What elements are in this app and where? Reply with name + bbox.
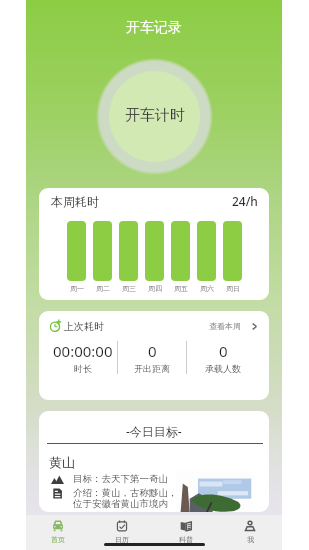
staticText: 时长: [74, 363, 92, 374]
staticText: 开出距离: [134, 363, 170, 374]
staticText: 24/h: [232, 193, 258, 209]
staticText: 0: [148, 341, 157, 361]
button[interactable]: 日历: [90, 515, 154, 550]
staticText: 周一: [70, 284, 84, 293]
staticText: 科普: [179, 535, 193, 544]
staticText: 介绍：黄山，古称黟山， 位于安徽省黄山市境内: [73, 487, 178, 510]
staticText: -今日目标-: [126, 423, 182, 439]
staticText: 周五: [174, 284, 188, 293]
button[interactable]: 首页: [26, 515, 90, 550]
button[interactable]: 科普: [154, 515, 218, 550]
other: 首页: [52, 520, 64, 532]
staticText: 周六: [200, 284, 214, 293]
staticText: 上次耗时: [64, 320, 104, 333]
other: 日历: [116, 520, 128, 532]
button[interactable]: 我: [218, 515, 282, 550]
staticText: 开车计时: [125, 106, 185, 125]
staticText: 开车记录: [126, 19, 182, 37]
staticText: 日历: [115, 535, 129, 544]
staticText: 周二: [96, 284, 110, 293]
staticText: 周四: [148, 284, 162, 293]
staticText: 我: [247, 535, 254, 544]
other: 科普: [180, 520, 192, 532]
staticText: 目标：去天下第一奇山: [73, 473, 168, 485]
staticText: 00:00:00: [53, 341, 113, 361]
button[interactable]: 开车计时: [96, 58, 213, 175]
staticText: 本周耗时: [51, 194, 99, 209]
staticText: 承载人数: [205, 363, 241, 374]
staticText: 周三: [122, 284, 136, 293]
button[interactable]: 查看本周: [203, 319, 259, 333]
staticText: 查看本周: [209, 321, 241, 331]
staticText: 周日: [226, 284, 240, 293]
staticText: 首页: [51, 535, 65, 544]
staticText: 黄山: [49, 454, 75, 470]
other: 我: [244, 520, 256, 532]
staticText: 0: [219, 341, 228, 361]
